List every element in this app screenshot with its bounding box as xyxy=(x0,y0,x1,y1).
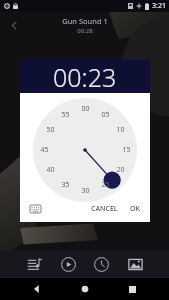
button[interactable]: CANCEL xyxy=(87,200,122,218)
staticText: 50 xyxy=(46,125,55,135)
staticText: 00 xyxy=(81,104,90,114)
button[interactable]: Back xyxy=(3,14,25,36)
button[interactable]: Image xyxy=(123,252,147,276)
staticText: 3:21 xyxy=(152,1,166,11)
button[interactable]: Select 10 seconds xyxy=(113,123,127,137)
button[interactable]: Timer xyxy=(89,252,113,276)
staticText: 00:23 xyxy=(53,60,117,93)
button[interactable]: OK xyxy=(126,200,144,218)
button[interactable]: Select 55 seconds xyxy=(58,108,72,122)
button[interactable]: Switch to keyboard input xyxy=(26,200,44,218)
button[interactable]: Select 20 seconds xyxy=(113,163,127,177)
staticText: OK xyxy=(130,204,140,214)
button[interactable]: Playlist xyxy=(22,252,46,276)
button[interactable]: Home xyxy=(74,278,96,300)
button[interactable]: Select 45 seconds xyxy=(37,143,51,157)
staticText: 10 xyxy=(116,125,125,135)
button[interactable]: Select 35 seconds xyxy=(58,178,72,192)
staticText: 05 xyxy=(101,110,110,120)
staticText: 55 xyxy=(61,110,70,120)
button[interactable]: Select 25 seconds xyxy=(98,178,112,192)
button[interactable]: Play xyxy=(56,252,80,276)
staticText: 15 xyxy=(122,145,131,155)
staticText: 45 xyxy=(40,145,49,155)
button[interactable]: Select 00 seconds xyxy=(78,102,92,116)
staticText: 30 xyxy=(81,186,90,196)
button[interactable]: Select 40 seconds xyxy=(43,163,57,177)
staticText: 35 xyxy=(61,180,70,190)
staticText: 40 xyxy=(46,165,55,175)
button[interactable]: Select 05 seconds xyxy=(98,108,112,122)
staticText: 20 xyxy=(116,165,125,175)
staticText: 25 xyxy=(101,180,110,190)
button[interactable]: Select 30 seconds xyxy=(78,184,92,198)
staticText: 00:28 xyxy=(77,27,93,35)
button[interactable]: Select 50 seconds xyxy=(43,123,57,137)
staticText: Gun Sound 1 xyxy=(62,16,108,26)
button[interactable]: Recent apps xyxy=(121,278,143,300)
button[interactable]: Select 15 seconds xyxy=(119,143,133,157)
staticText: CANCEL xyxy=(91,204,118,214)
button[interactable]: Back xyxy=(26,278,48,300)
